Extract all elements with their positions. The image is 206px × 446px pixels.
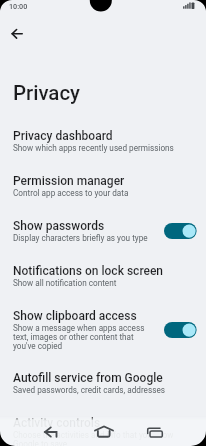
- button[interactable]: Autofill service from Google: [0, 361, 206, 406]
- staticText: Activity controls: [13, 416, 101, 430]
- staticText: Show a message when apps access: [13, 323, 145, 333]
- button[interactable]: [164, 322, 197, 338]
- staticText: Permission manager: [13, 174, 125, 188]
- staticText: Saved passwords, credit cards, addresses: [13, 385, 165, 395]
- staticText: Show all notification content: [13, 278, 117, 288]
- button[interactable]: [41, 422, 62, 443]
- button[interactable]: [93, 422, 115, 444]
- staticText: 10:00: [9, 2, 28, 10]
- button[interactable]: Permission manager: [0, 164, 206, 209]
- staticText: Show passwords: [13, 219, 105, 233]
- staticText: Autofill service from Google: [13, 371, 163, 385]
- button[interactable]: [145, 422, 167, 444]
- button[interactable]: Privacy dashboard: [0, 119, 206, 164]
- staticText: Google to save: [13, 439, 68, 446]
- button[interactable]: Show clipboard access: [0, 299, 206, 362]
- staticText: you've copied: [13, 341, 63, 351]
- button[interactable]: Activity controls: [0, 406, 206, 446]
- staticText: Privacy dashboard: [13, 129, 113, 143]
- staticText: text, images or other content that: [13, 332, 134, 342]
- staticText: Show clipboard access: [13, 309, 137, 323]
- staticText: Show which apps recently used permission…: [13, 143, 174, 153]
- button[interactable]: [8, 25, 26, 43]
- button[interactable]: Notifications on lock screen: [0, 254, 206, 299]
- staticText: Choose the activities and info that you …: [13, 430, 174, 440]
- staticText: Control app access to your data: [13, 188, 129, 198]
- button[interactable]: Show passwords: [0, 209, 206, 254]
- staticText: Display characters briefly as you type: [13, 233, 148, 243]
- button[interactable]: [164, 223, 197, 239]
- staticText: Notifications on lock screen: [13, 264, 164, 278]
- staticText: Privacy: [13, 81, 81, 105]
